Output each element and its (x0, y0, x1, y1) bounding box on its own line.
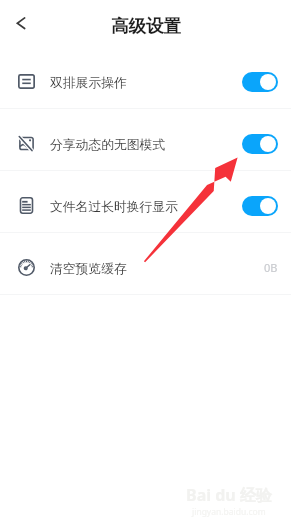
button[interactable]: 清空预览缓存 (0, 237, 291, 298)
button[interactable]: 文件名过长时换行显示 (0, 175, 291, 236)
button[interactable]: Back (6, 11, 36, 41)
button[interactable]: 分享动态的无图模式 (0, 113, 291, 174)
staticText: 清空预览缓存 (50, 261, 127, 277)
staticText: 文件名过长时换行显示 (50, 199, 178, 215)
staticText: 双排展示操作 (50, 75, 127, 91)
button[interactable]: Toggle on (242, 134, 278, 154)
staticText: jingyan.baidu.com (192, 506, 266, 518)
staticText: Bai du 经验 (186, 484, 272, 506)
staticText: 分享动态的无图模式 (50, 137, 166, 153)
button[interactable]: Toggle on (242, 72, 278, 92)
staticText: 高级设置 (111, 15, 181, 37)
button[interactable]: 双排展示操作 (0, 51, 291, 112)
staticText: 0B (264, 260, 278, 275)
button[interactable]: Toggle on (242, 196, 278, 216)
